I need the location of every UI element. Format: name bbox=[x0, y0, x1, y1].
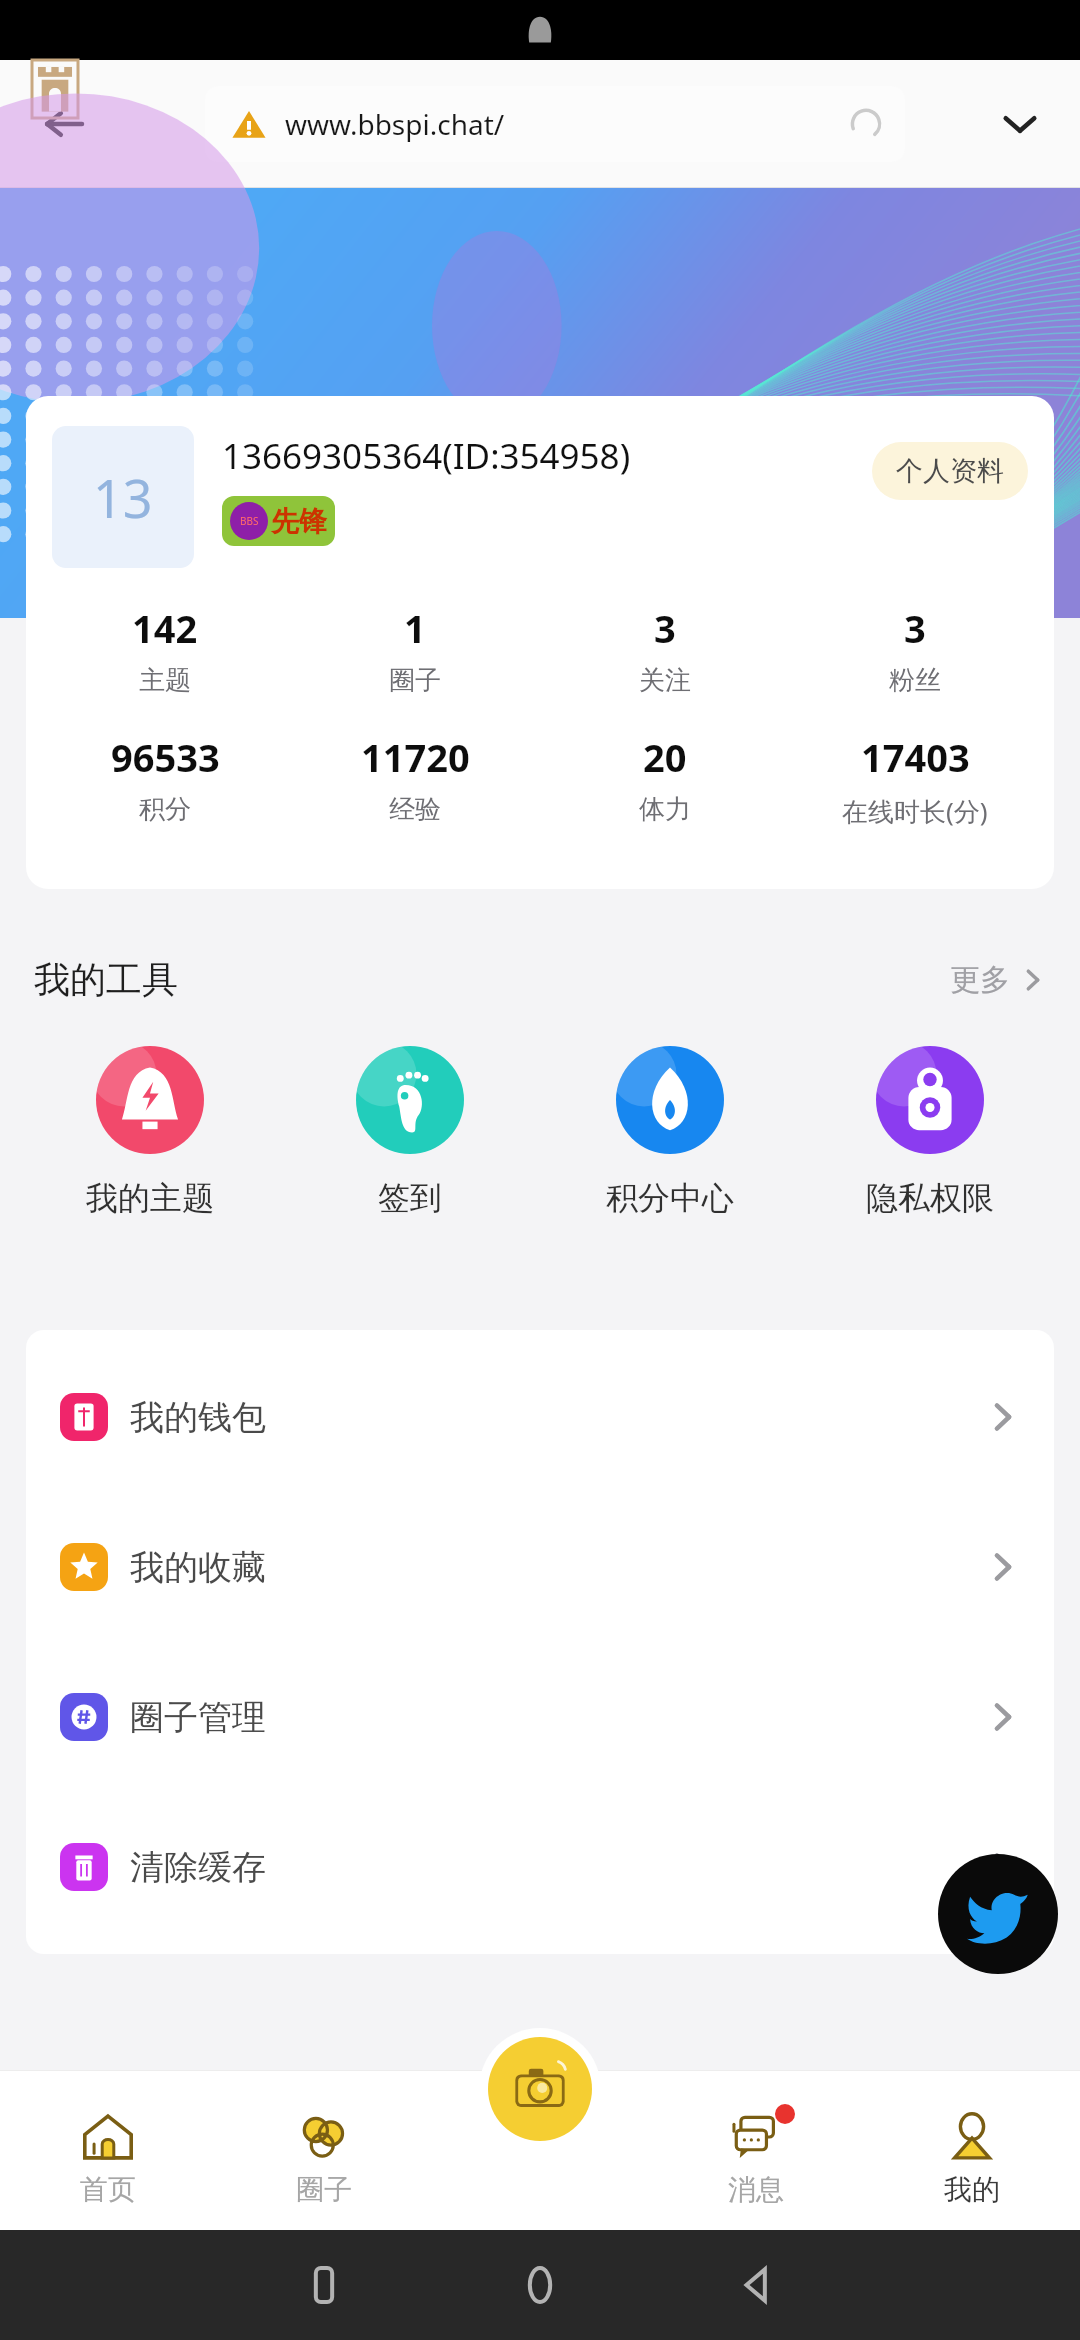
staticText: 隐私权限 bbox=[866, 1178, 994, 1218]
staticText: 我的工具 bbox=[34, 957, 178, 1002]
staticText: 17403 bbox=[861, 731, 970, 783]
button[interactable]: 首页 bbox=[0, 2070, 216, 2230]
staticText: 我的钱包 bbox=[130, 1396, 266, 1439]
button[interactable]: Recents bbox=[216, 2268, 432, 2302]
staticText: 我的主题 bbox=[86, 1178, 214, 1218]
staticText: 主题 bbox=[139, 664, 191, 697]
button[interactable]: 96533 bbox=[40, 731, 290, 826]
button[interactable]: 13 bbox=[52, 426, 194, 568]
button[interactable]: Camera bbox=[488, 2037, 592, 2141]
button[interactable]: 3 bbox=[790, 602, 1040, 697]
staticText: 13669305364(ID:354958) bbox=[222, 432, 631, 480]
staticText: 11720 bbox=[361, 731, 470, 783]
staticText: 更多 bbox=[950, 961, 1010, 999]
button[interactable]: www.bbspi.chat/ bbox=[205, 86, 905, 162]
staticText: 13 bbox=[93, 462, 153, 533]
button[interactable]: 隐私权限 bbox=[800, 1046, 1060, 1218]
button[interactable]: Twitter bbox=[938, 1854, 1058, 1974]
button[interactable]: Home bbox=[432, 2268, 648, 2302]
staticText: 个人资料 bbox=[896, 454, 1004, 488]
button[interactable]: 17403 bbox=[790, 731, 1040, 829]
button[interactable]: 1 bbox=[290, 602, 540, 697]
staticText: 粉丝 bbox=[889, 664, 941, 697]
button[interactable]: 签到 bbox=[280, 1046, 540, 1218]
staticText: 先锋 bbox=[271, 504, 327, 539]
staticText: 我的 bbox=[944, 2172, 1000, 2207]
button[interactable]: BBS bbox=[230, 496, 327, 546]
staticText: 圈子 bbox=[389, 664, 441, 697]
button[interactable]: 3 bbox=[540, 602, 790, 697]
button[interactable]: 我的收藏 bbox=[26, 1492, 1054, 1642]
button[interactable]: 11720 bbox=[290, 731, 540, 826]
button[interactable]: 圈子管理 bbox=[26, 1642, 1054, 1792]
staticText: 签到 bbox=[378, 1178, 442, 1218]
staticText: 关注 bbox=[639, 664, 691, 697]
staticText: 圈子 bbox=[296, 2172, 352, 2207]
staticText: 3 bbox=[904, 602, 926, 654]
staticText: BBS bbox=[240, 514, 259, 528]
staticText: 首页 bbox=[80, 2172, 136, 2207]
button[interactable]: 个人资料 bbox=[896, 442, 1004, 500]
button[interactable]: 积分中心 bbox=[540, 1046, 800, 1218]
button[interactable]: Back bbox=[34, 94, 94, 154]
staticText: 清除缓存 bbox=[130, 1846, 266, 1889]
staticText: 20 bbox=[643, 731, 687, 783]
button[interactable]: 我的钱包 bbox=[26, 1342, 1054, 1492]
button[interactable]: 20 bbox=[540, 731, 790, 826]
staticText: www.bbspi.chat/ bbox=[285, 105, 505, 143]
button[interactable]: 消息 bbox=[648, 2070, 864, 2230]
staticText: 积分 bbox=[139, 793, 191, 826]
staticText: 我的收藏 bbox=[130, 1546, 266, 1589]
staticText: 1 bbox=[404, 602, 426, 654]
other: Reload bbox=[849, 107, 883, 141]
staticText: 3 bbox=[654, 602, 676, 654]
button[interactable]: More bbox=[990, 94, 1050, 154]
button[interactable]: 圈子 bbox=[216, 2070, 432, 2230]
button[interactable]: 我的 bbox=[864, 2070, 1080, 2230]
staticText: 经验 bbox=[389, 793, 441, 826]
staticText: 体力 bbox=[639, 793, 691, 826]
staticText: 96533 bbox=[111, 731, 220, 783]
button[interactable]: 142 bbox=[40, 602, 290, 697]
staticText: 142 bbox=[132, 602, 198, 654]
staticText: 积分中心 bbox=[606, 1178, 734, 1218]
button[interactable]: 更多 bbox=[950, 961, 1046, 999]
staticText: 在线时长(分) bbox=[842, 793, 988, 829]
button[interactable]: Back bbox=[648, 2268, 864, 2302]
staticText: 消息 bbox=[728, 2172, 784, 2207]
button[interactable]: 清除缓存 bbox=[26, 1792, 1054, 1942]
staticText: 圈子管理 bbox=[130, 1696, 266, 1739]
button[interactable]: 我的主题 bbox=[20, 1046, 280, 1218]
